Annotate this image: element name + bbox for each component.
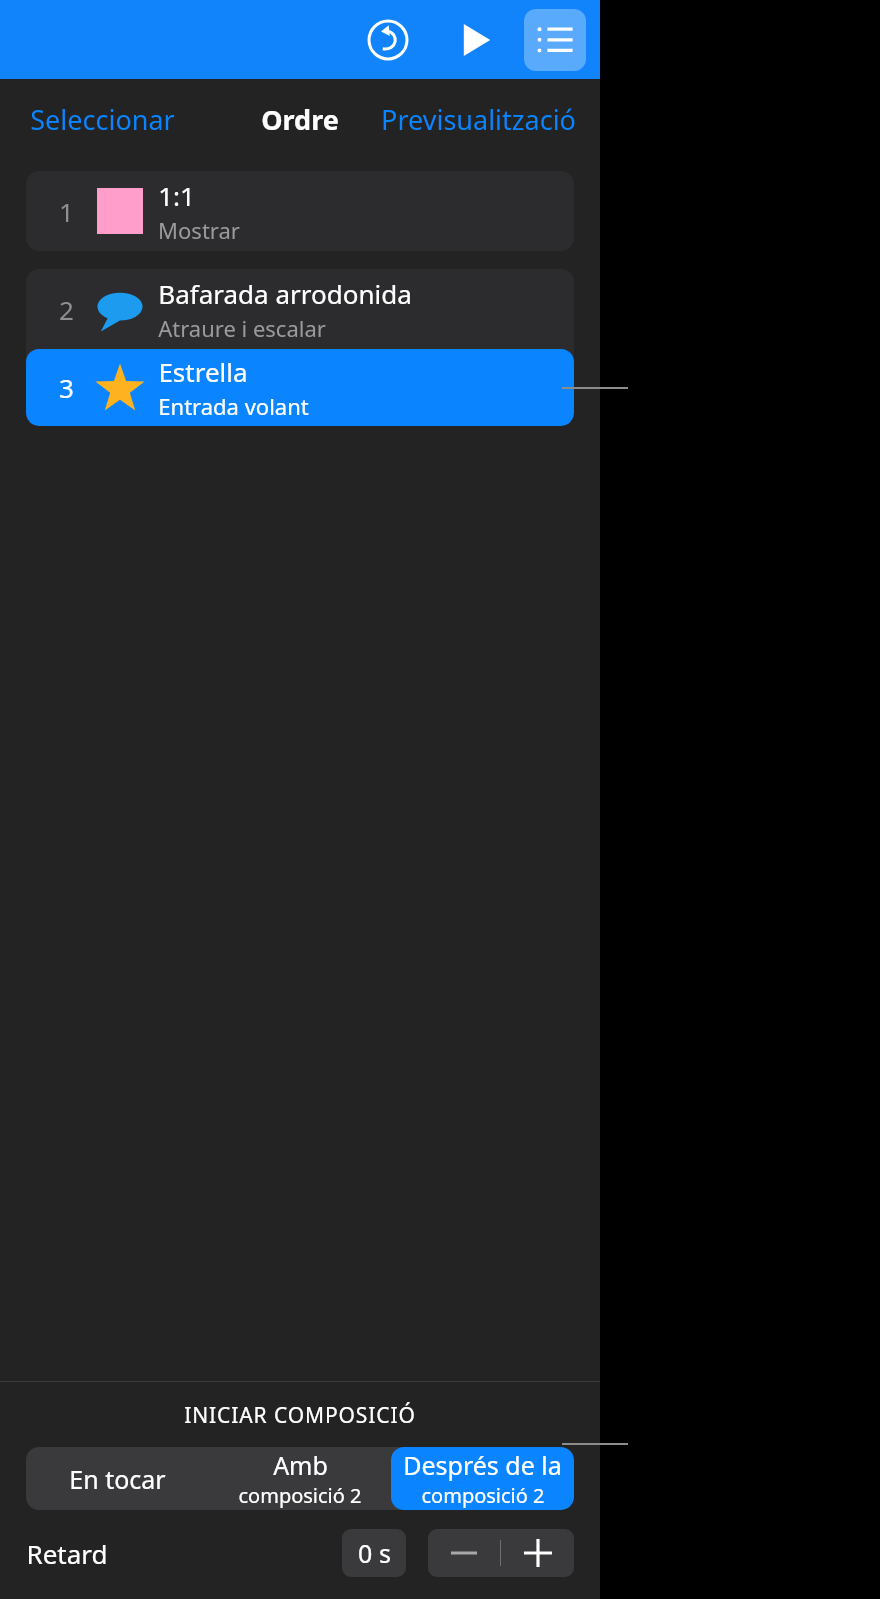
button[interactable]: 0 s [342, 1529, 406, 1577]
button[interactable]: 1 [26, 171, 574, 251]
button[interactable]: Amb [208, 1447, 391, 1510]
staticText: 1:1 [158, 178, 195, 213]
staticText: Atraure i escalar [158, 313, 326, 343]
button[interactable]: Play [446, 12, 502, 68]
button[interactable]: 2 [26, 269, 574, 349]
staticText: INICIAR COMPOSICIÓ [184, 1401, 416, 1430]
staticText: 1 [59, 194, 74, 229]
staticText: Mostrar [158, 215, 240, 245]
button[interactable]: Build order [524, 9, 586, 71]
staticText: Previsualització [381, 101, 576, 138]
staticText: composició 2 [238, 1482, 362, 1509]
staticText: Estrella [158, 354, 248, 389]
button[interactable]: Després de la [391, 1447, 574, 1510]
staticText: En tocar [69, 1462, 166, 1496]
staticText: 2 [59, 292, 74, 327]
button[interactable]: Decrease delay [428, 1529, 500, 1577]
staticText: Amb [273, 1448, 328, 1482]
button[interactable]: 3 [26, 349, 574, 426]
staticText: Ordre [261, 101, 339, 138]
staticText: composició 2 [421, 1482, 545, 1509]
staticText: 3 [59, 370, 74, 405]
staticText: Retard [26, 1536, 108, 1571]
staticText: Entrada volant [158, 391, 309, 421]
button[interactable]: Seleccionar [18, 93, 187, 146]
button[interactable]: En tocar [26, 1447, 208, 1510]
staticText: Seleccionar [30, 101, 175, 138]
button[interactable]: Previsualització [369, 93, 588, 146]
button[interactable]: Increase delay [501, 1529, 574, 1577]
button[interactable]: Undo [360, 12, 416, 68]
staticText: Després de la [403, 1448, 562, 1482]
staticText: Bafarada arrodonida [158, 276, 412, 311]
staticText: 0 s [358, 1536, 391, 1570]
button[interactable]: Ordre [247, 93, 353, 146]
